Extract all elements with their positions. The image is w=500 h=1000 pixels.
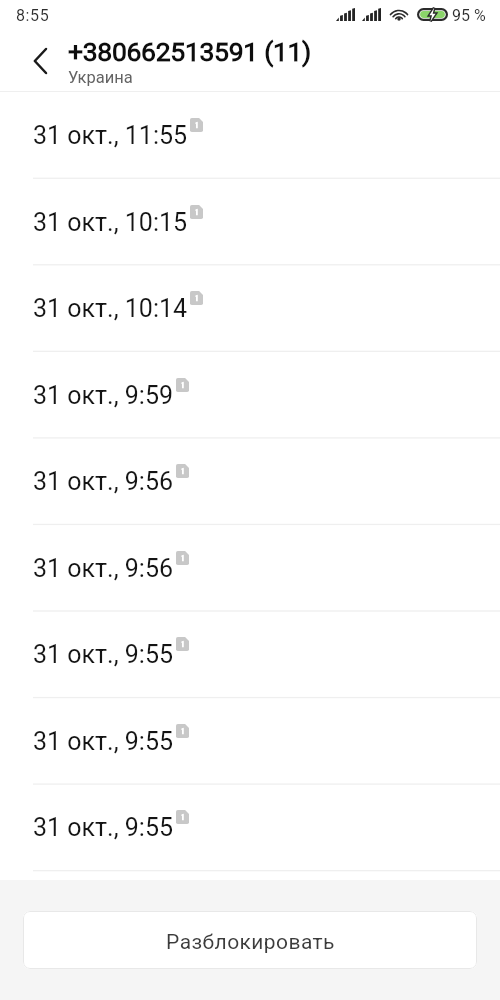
staticText: 31 окт., 9:59 (33, 381, 174, 410)
button[interactable]: 31 окт., 10:15 (0, 179, 500, 265)
staticText: Украина (68, 68, 133, 87)
staticText: 31 окт., 9:55 (33, 813, 174, 842)
staticText: 31 окт., 10:15 (33, 208, 188, 237)
button[interactable]: 31 окт., 9:55 (0, 784, 500, 870)
staticText: 8:55 (16, 6, 50, 25)
button[interactable]: 31 окт., 9:55 (0, 611, 500, 697)
button[interactable]: 31 окт., 9:55 (0, 698, 500, 784)
button[interactable]: 31 окт., 9:56 (0, 525, 500, 611)
staticText: 31 окт., 10:14 (33, 294, 188, 323)
staticText: +380662513591 (11) (68, 36, 312, 67)
staticText: 31 окт., 9:56 (33, 467, 174, 496)
button[interactable]: 31 окт., 10:14 (0, 265, 500, 351)
staticText: 95 % (452, 6, 486, 25)
staticText: 31 окт., 11:55 (33, 121, 188, 150)
button[interactable]: 31 окт., 9:56 (0, 438, 500, 524)
staticText: Разблокировать (166, 930, 335, 955)
staticText: 31 окт., 9:56 (33, 554, 174, 583)
button[interactable]: Back (18, 37, 62, 81)
button[interactable]: 31 окт., 9:59 (0, 352, 500, 438)
staticText: 31 окт., 9:55 (33, 640, 174, 669)
button[interactable]: 31 окт., 11:55 (0, 93, 500, 178)
staticText: 31 окт., 9:55 (33, 727, 174, 756)
button[interactable]: Разблокировать (23, 911, 477, 969)
